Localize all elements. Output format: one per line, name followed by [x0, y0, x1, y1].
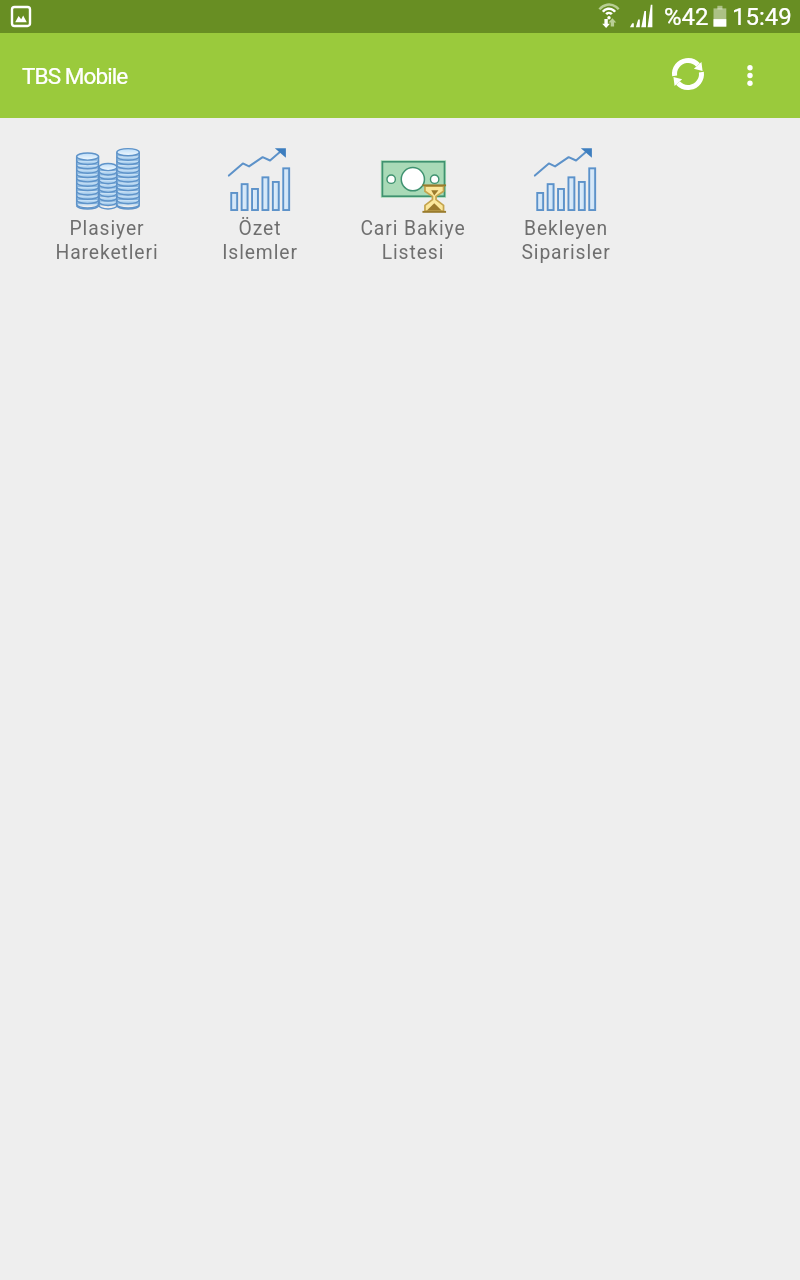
button[interactable]: Bekleyen Siparisler [489, 118, 642, 278]
staticText: Bekleyen Siparisler [521, 217, 611, 264]
button[interactable]: Cari Bakiye Listesi [336, 118, 489, 278]
button[interactable]: Plasiyer Hareketleri [30, 118, 183, 278]
staticText: Cari Bakiye Listesi [360, 217, 466, 264]
staticText: %42 [664, 3, 709, 31]
staticText: TBS Mobile [22, 63, 128, 89]
button[interactable]: More options [726, 33, 774, 118]
staticText: 15:49 [732, 3, 792, 31]
staticText: Plasiyer Hareketleri [55, 217, 159, 264]
staticText: Özet Islemler [222, 217, 298, 264]
button[interactable]: Refresh [656, 33, 720, 118]
button[interactable]: Özet Islemler [183, 118, 336, 278]
